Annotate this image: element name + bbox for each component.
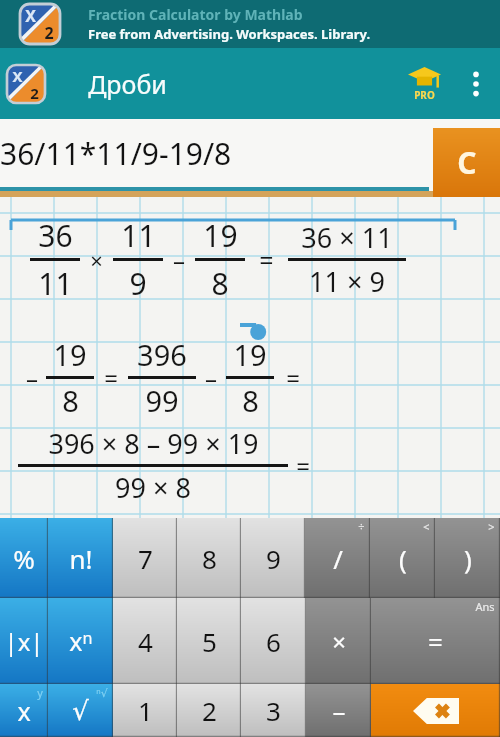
button[interactable]: |x| <box>0 598 48 684</box>
staticText: √ <box>72 696 89 726</box>
staticText: PRO <box>414 88 435 102</box>
staticText: C <box>457 142 477 183</box>
staticText: / <box>333 541 343 576</box>
staticText: ) <box>464 541 472 576</box>
button[interactable]: 7 <box>113 518 177 598</box>
staticText: Ans <box>475 599 495 614</box>
staticText: 11 × 9 <box>309 263 385 300</box>
staticText: 2 <box>202 693 217 728</box>
staticText: < <box>423 519 430 534</box>
button[interactable]: 1 <box>113 684 177 737</box>
staticText: – <box>26 361 38 394</box>
staticText: Fraction Calculator by Mathlab <box>88 5 303 24</box>
button[interactable]: 6 <box>241 598 306 684</box>
staticText: ( <box>399 541 407 576</box>
button[interactable]: 3 <box>241 684 306 737</box>
staticText: X <box>12 66 23 86</box>
button[interactable]: > <box>435 518 500 598</box>
staticText: 19 <box>203 215 238 256</box>
staticText: = <box>104 361 118 394</box>
staticText: = <box>286 361 300 394</box>
staticText: 36/11*11/9-19/8 <box>0 133 232 174</box>
staticText: 19 <box>53 335 87 374</box>
staticText: 4 <box>138 624 153 659</box>
staticText: = <box>296 449 310 482</box>
staticText: × <box>90 245 103 275</box>
staticText: y <box>37 685 43 700</box>
staticText: |x| <box>4 625 44 658</box>
button[interactable]: < <box>370 518 435 598</box>
button[interactable]: 36/11*11/9-19/8 <box>0 119 433 191</box>
staticText: × <box>332 625 346 658</box>
staticText: 6 <box>266 624 281 659</box>
staticText: 99 × 8 <box>115 469 191 506</box>
staticText: > <box>488 519 495 534</box>
button[interactable]: – <box>306 684 371 737</box>
staticText: 8 <box>202 541 217 576</box>
staticText: 2 <box>30 83 39 103</box>
button[interactable]: × <box>306 598 371 684</box>
staticText: 5 <box>202 624 217 659</box>
staticText: Дроби <box>88 67 167 101</box>
staticText: 11 <box>121 215 156 256</box>
staticText: – <box>173 243 185 276</box>
button[interactable]: C <box>433 128 500 197</box>
button[interactable]: xⁿ <box>48 598 113 684</box>
button[interactable]: X <box>0 0 500 48</box>
button[interactable]: PRO upgrade <box>400 60 448 108</box>
staticText: 8 <box>62 381 79 420</box>
staticText: – <box>205 361 217 394</box>
button[interactable]: Backspace <box>371 684 500 737</box>
staticText: 99 <box>145 381 179 420</box>
button[interactable]: % <box>0 518 48 598</box>
button[interactable]: 9 <box>241 518 305 598</box>
staticText: x <box>17 694 31 728</box>
button[interactable]: Ans <box>371 598 500 684</box>
staticText: 9 <box>266 541 281 576</box>
button[interactable]: 5 <box>177 598 241 684</box>
button[interactable]: ⁿ√ <box>48 684 113 737</box>
staticText: xⁿ <box>69 624 93 658</box>
staticText: ⁿ√ <box>96 685 108 700</box>
staticText: – <box>332 693 346 728</box>
staticText: 396 × 8 – 99 × 19 <box>48 425 259 462</box>
staticText: 36 <box>38 215 73 256</box>
staticText: 7 <box>138 541 153 576</box>
staticText: ÷ <box>358 519 365 534</box>
button[interactable]: 8 <box>177 518 241 598</box>
staticText: % <box>13 541 35 576</box>
staticText: = <box>259 243 274 277</box>
staticText: 8 <box>242 381 259 420</box>
button[interactable]: 2 <box>177 684 241 737</box>
button[interactable]: More options <box>452 48 500 119</box>
staticText: 36 × 11 <box>301 219 393 256</box>
staticText: = <box>428 624 443 659</box>
staticText: X <box>25 5 36 27</box>
staticText: Free from Advertising. Workspaces. Libra… <box>88 25 371 43</box>
button[interactable]: ÷ <box>305 518 370 598</box>
staticText: 2 <box>44 22 54 44</box>
staticText: 8 <box>211 263 229 304</box>
staticText: n! <box>69 541 93 576</box>
staticText: 19 <box>233 335 267 374</box>
button[interactable]: 4 <box>113 598 177 684</box>
staticText: 9 <box>129 263 147 304</box>
staticText: 396 <box>137 335 187 374</box>
staticText: 1 <box>138 693 153 728</box>
button[interactable]: y <box>0 684 48 737</box>
staticText: 3 <box>266 693 281 728</box>
staticText: 11 <box>38 263 73 304</box>
button[interactable]: n! <box>48 518 113 598</box>
